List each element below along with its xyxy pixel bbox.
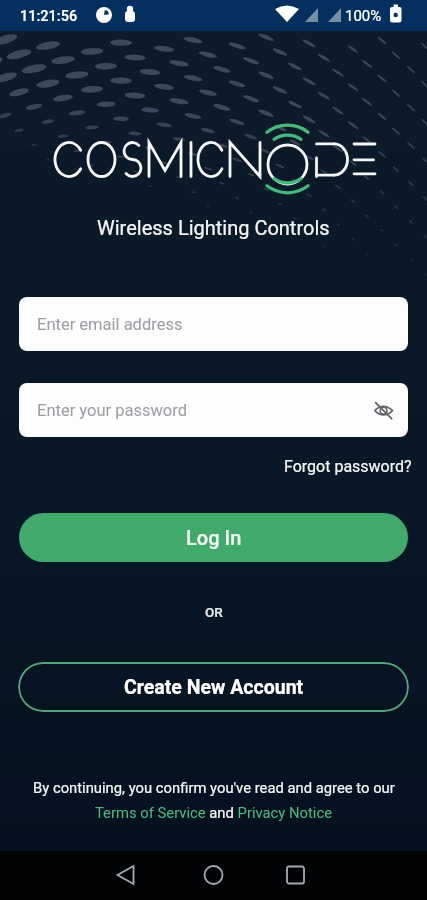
button[interactable] [0,851,143,900]
staticText: Create New Account [124,676,304,699]
button[interactable]: Enter your password [19,383,408,437]
staticText: Enter your password [37,401,188,420]
staticText: Log In [186,526,242,549]
button[interactable]: Forgot password? [284,457,412,476]
button[interactable]: Create New Account [18,662,409,712]
button[interactable] [285,851,427,900]
staticText: 100% [345,7,382,25]
button[interactable]: Terms of Service and Privacy Notice [95,804,333,821]
staticText: 11:21:56 [20,8,78,25]
staticText: Wireless Lighting Controls [97,216,330,239]
staticText: Enter email address [37,315,183,334]
staticText: OR [205,604,223,620]
staticText: By continuing, you confirm you've read a… [33,779,395,796]
button[interactable]: Log In [19,513,408,562]
button[interactable] [143,851,285,900]
button[interactable]: Enter email address [19,297,408,351]
